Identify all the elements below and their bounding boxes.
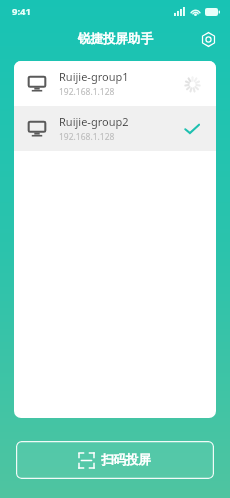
staticText: Ruijie-group1 xyxy=(59,69,129,84)
button[interactable]: Ruijie-group2 xyxy=(14,106,216,151)
staticText: 扫码投屏 xyxy=(101,452,151,468)
button[interactable]: Settings xyxy=(196,27,220,51)
staticText: 192.168.1.128 xyxy=(59,86,115,98)
staticText: 9:41 xyxy=(12,5,31,18)
button[interactable]: Ruijie-group1 xyxy=(14,61,216,106)
button[interactable]: 扫码投屏 xyxy=(16,441,214,479)
staticText: 锐捷投屏助手 xyxy=(78,31,153,47)
staticText: 192.168.1.128 xyxy=(59,131,115,143)
staticText: Ruijie-group2 xyxy=(59,114,129,129)
